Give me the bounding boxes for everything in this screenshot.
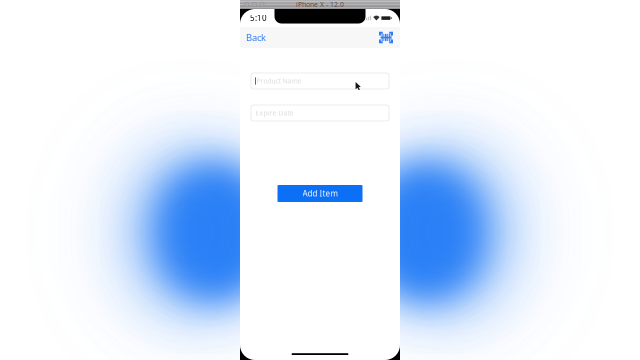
staticText: Product Name [257, 77, 302, 85]
staticText: 5:10 [250, 13, 267, 23]
button[interactable]: Add Item [277, 185, 362, 202]
staticText: iPhone X - 12.0 [296, 0, 344, 9]
staticText: Add Item [302, 188, 337, 199]
button[interactable]: Scan barcode [379, 28, 400, 47]
button[interactable]: Back [240, 27, 266, 48]
staticText: Expire Date [256, 109, 294, 117]
staticText: Back [246, 31, 266, 44]
